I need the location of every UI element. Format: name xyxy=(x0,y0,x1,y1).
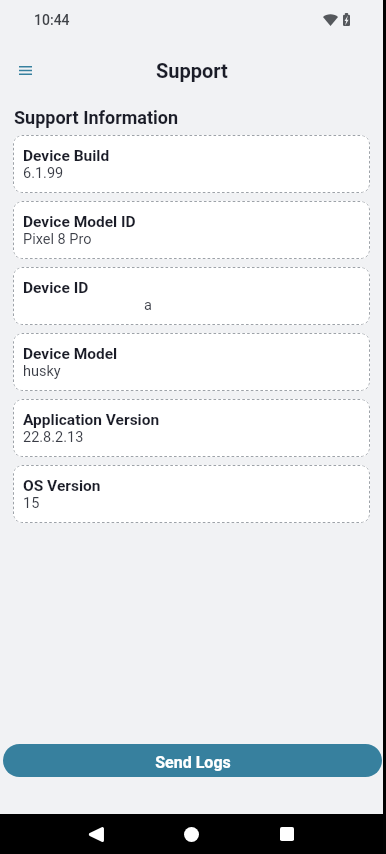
button[interactable]: Send Logs xyxy=(3,744,382,777)
staticText: OS Version xyxy=(23,477,101,495)
staticText: a xyxy=(144,297,152,314)
button[interactable]: Open navigation menu xyxy=(7,48,43,84)
staticText: Device ID xyxy=(23,279,89,297)
button[interactable]: Device ID xyxy=(13,267,370,325)
staticText: 22.8.2.13 xyxy=(23,429,84,446)
staticText: husky xyxy=(23,363,61,380)
staticText: Device Model xyxy=(23,345,118,363)
button[interactable]: Home xyxy=(167,814,215,854)
staticText: 10:44 xyxy=(34,12,70,28)
staticText: Device Model ID xyxy=(23,213,136,231)
button[interactable]: Device Build xyxy=(13,135,370,193)
staticText: 15 xyxy=(23,495,40,512)
button[interactable]: Recent apps xyxy=(263,814,311,854)
button[interactable]: OS Version xyxy=(13,465,370,523)
button[interactable]: Back xyxy=(72,814,120,854)
staticText: Support Information xyxy=(14,107,179,128)
staticText: Send Logs xyxy=(155,753,231,772)
staticText: Pixel 8 Pro xyxy=(23,231,92,248)
staticText: 6.1.99 xyxy=(23,165,64,182)
staticText: Application Version xyxy=(23,411,160,429)
staticText: Device Build xyxy=(23,147,110,165)
button[interactable]: Device Model ID xyxy=(13,201,370,259)
button[interactable]: Application Version xyxy=(13,399,370,457)
button[interactable]: Device Model xyxy=(13,333,370,391)
staticText: Support xyxy=(156,59,228,82)
